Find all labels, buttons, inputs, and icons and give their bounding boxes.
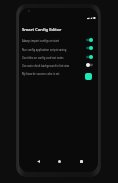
staticText: Run config application scripts saving bbox=[22, 48, 67, 52]
button[interactable]: Pick favourite sources colour bbox=[85, 73, 92, 80]
staticText: Smart Config Editor bbox=[22, 27, 62, 33]
staticText: Use titles on config card not notes bbox=[22, 56, 64, 60]
button[interactable]: Use titles on config card not notes bbox=[19, 54, 98, 62]
button[interactable]: Recent apps bbox=[74, 155, 88, 167]
staticText: Always import configs on start bbox=[22, 39, 59, 43]
button[interactable]: Back bbox=[31, 155, 45, 167]
button[interactable]: My favorite sources color is set bbox=[19, 69, 98, 78]
button[interactable]: Use auto check background in list view bbox=[19, 62, 98, 70]
staticText: Use auto check background in list view bbox=[22, 64, 70, 68]
button[interactable]: Run config application scripts saving bbox=[19, 46, 98, 54]
staticText: My favorite sources color is set bbox=[22, 72, 60, 76]
button[interactable]: Home bbox=[52, 155, 66, 167]
button[interactable]: Always import configs on start bbox=[19, 37, 98, 45]
